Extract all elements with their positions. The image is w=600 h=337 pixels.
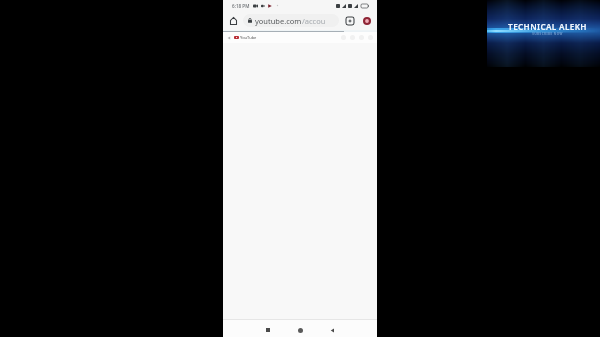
button[interactable]: Action	[368, 35, 373, 40]
staticText: 6:18 PM	[232, 3, 250, 9]
button[interactable]: Stop recording	[360, 14, 373, 27]
button[interactable]: youtube.com	[243, 14, 339, 27]
staticText: youtube.com	[255, 16, 302, 26]
staticText: YouTube	[240, 35, 257, 40]
button[interactable]: Home	[227, 14, 240, 27]
button[interactable]: Home	[293, 323, 307, 337]
staticText: TECHNICAL ALEKH	[508, 21, 587, 32]
button[interactable]: Back	[325, 323, 339, 337]
staticText: /accou	[302, 16, 326, 26]
button[interactable]: Action	[341, 35, 346, 40]
staticText: SUBSCRIBE NOW	[532, 32, 563, 36]
button[interactable]: Action	[350, 35, 355, 40]
button[interactable]: Technical Alekh channel logo	[487, 0, 600, 67]
button[interactable]: Back	[225, 34, 233, 42]
button[interactable]: YouTube	[234, 35, 257, 40]
button[interactable]: New tab	[343, 14, 356, 27]
button[interactable]: Recents	[261, 323, 275, 337]
button[interactable]: Action	[359, 35, 364, 40]
